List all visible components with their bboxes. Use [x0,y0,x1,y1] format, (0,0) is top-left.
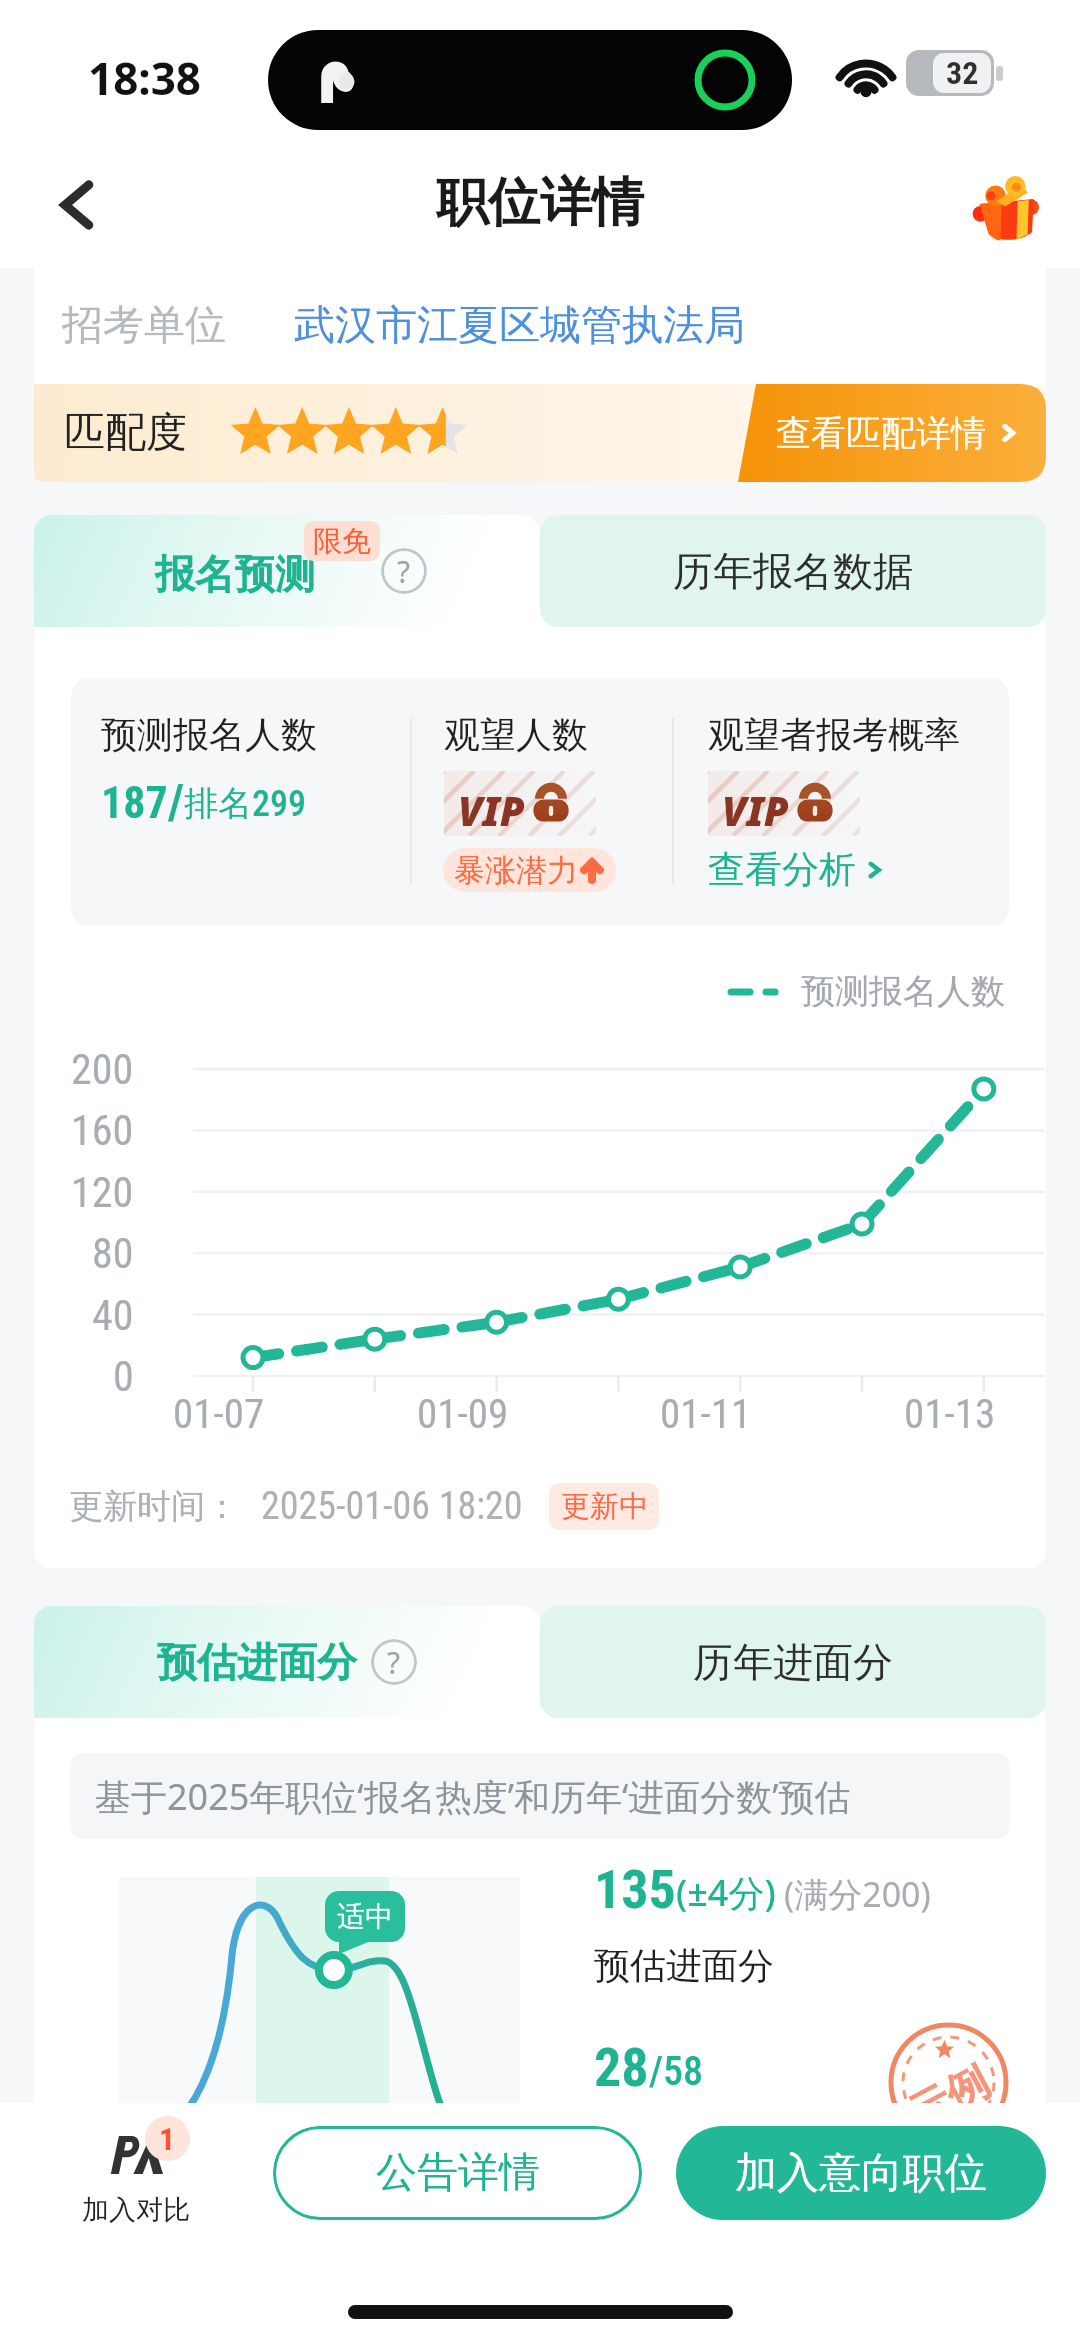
staticText: 187 [101,777,168,829]
staticText: 预测报名人数 [801,970,1005,1013]
staticText: 更新中 [561,1488,648,1525]
button[interactable]: 历年报名数据 [540,515,1046,627]
staticText: 299 [252,783,306,825]
button[interactable]: 预估进面分 [34,1606,540,1718]
button[interactable]: 历年进面分 [540,1606,1046,1718]
staticText: 28 [594,2036,649,2099]
button[interactable]: 报名预测 [34,515,540,627]
staticText: 职位详情 [436,170,644,236]
staticText: 预估进面分 [157,1637,357,1687]
staticText: 80 [92,1229,134,1278]
staticText: 更新时间： [69,1485,239,1528]
staticText: 基于2025年职位‘报名热度’和历年‘进面分数’预估 [95,1772,851,1821]
staticText: 200 [71,1045,134,1094]
staticText: 报名预测 [155,549,315,599]
staticText: 适中 [337,1899,393,1934]
staticText: 示例 [899,2055,998,2142]
staticText: 预估进面分 [594,1943,774,1988]
button[interactable]: 加入意向职位 [676,2126,1046,2220]
staticText: 135 [594,1858,676,1921]
staticText: 匹配度 [64,407,187,459]
staticText: 公告详情 [376,2147,540,2199]
staticText: ? [397,551,411,592]
staticText: 排名 [184,782,252,825]
staticText: (满分200) [784,1871,931,1917]
staticText: 01-13 [904,1390,996,1438]
staticText: VIP [458,783,525,836]
staticText: 2025-01-06 18:20 [261,1484,523,1529]
staticText: 武汉市江夏区城管执法局 [294,300,745,352]
staticText: 120 [71,1168,134,1217]
staticText: 01-11 [660,1390,752,1438]
button[interactable]: Gift [964,163,1046,245]
staticText: 32 [946,54,979,92]
staticText: 40 [92,1291,134,1340]
staticText: ? [387,1642,401,1683]
staticText: 招考单位 [62,300,226,352]
button[interactable]: 公告详情 [273,2126,642,2220]
staticText: / [168,773,184,829]
button[interactable]: 1 [82,2103,191,2243]
staticText: 预测报名人数 [101,712,317,757]
staticText: 18:38 [88,48,202,108]
staticText: 加入意向职位 [735,2147,987,2200]
staticText: 限免 [313,523,371,560]
staticText: 查看分析 [708,846,856,893]
button[interactable]: 查看分析 [708,846,886,893]
staticText: 加入对比 [82,2193,190,2227]
staticText: 0 [113,1352,134,1401]
staticText: VIP [722,783,789,836]
button[interactable]: 查看匹配详情 [738,384,1046,482]
staticText: 查看匹配详情 [776,411,986,455]
staticText: (±4分) [676,1868,776,1917]
staticText: 暴涨潜力 [454,851,578,890]
staticText: 观望者报考概率 [708,712,960,757]
staticText: 历年进面分 [693,1637,893,1687]
staticText: /58 [649,2048,703,2095]
staticText: 1 [159,2120,176,2158]
button[interactable]: Back [42,169,114,241]
staticText: 01-09 [417,1390,509,1438]
staticText: 观望人数 [444,712,588,757]
staticText: 历年报名数据 [673,546,913,596]
staticText: 01-07 [173,1390,265,1438]
staticText: 160 [71,1106,134,1155]
